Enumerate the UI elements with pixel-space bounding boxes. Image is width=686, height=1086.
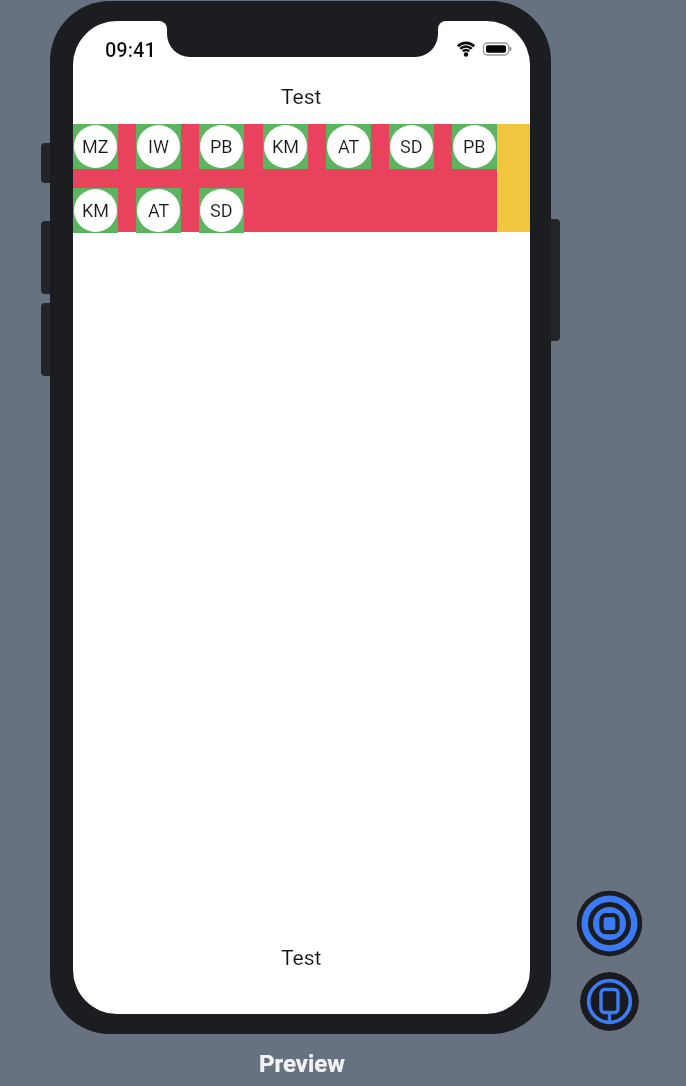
staticText: MZ — [82, 136, 109, 157]
button[interactable]: AT — [136, 188, 181, 233]
staticText: KM — [272, 136, 300, 157]
staticText: PB — [463, 136, 486, 157]
staticText: SD — [400, 136, 423, 157]
button[interactable]: KM — [263, 124, 308, 169]
button[interactable]: MZ — [73, 124, 118, 169]
button[interactable]: PB — [199, 124, 244, 169]
staticText: SD — [210, 200, 233, 221]
button[interactable]: SD — [389, 124, 434, 169]
button[interactable] — [580, 972, 639, 1031]
button[interactable]: PB — [452, 124, 497, 169]
staticText: 09:41 — [105, 38, 156, 61]
staticText: PB — [210, 136, 233, 157]
staticText: KM — [82, 200, 110, 221]
button[interactable]: IW — [136, 124, 181, 169]
button[interactable] — [576, 890, 643, 957]
staticText: IW — [148, 136, 169, 157]
button[interactable]: AT — [326, 124, 371, 169]
staticText: Test — [281, 85, 322, 110]
button[interactable]: SD — [199, 188, 244, 233]
staticText: Preview — [259, 1050, 345, 1077]
staticText: Test — [281, 946, 322, 971]
button[interactable]: KM — [73, 188, 118, 233]
staticText: AT — [148, 200, 170, 221]
staticText: AT — [338, 136, 360, 157]
